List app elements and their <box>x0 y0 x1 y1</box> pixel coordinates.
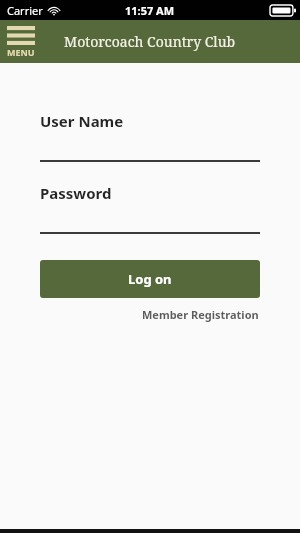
button[interactable]: Menu <box>6 25 36 59</box>
button[interactable]: Log on <box>40 260 260 298</box>
staticText: User Name <box>40 111 124 131</box>
staticText: Member Registration <box>142 307 259 322</box>
staticText: Password <box>40 183 112 203</box>
staticText: MENU <box>7 46 35 58</box>
staticText: Motorcoach Country Club <box>64 32 236 51</box>
staticText: 11:57 AM <box>125 3 175 18</box>
staticText: Log on <box>128 270 172 288</box>
button[interactable]: Member Registration <box>140 305 261 324</box>
staticText: Carrier <box>7 3 43 18</box>
